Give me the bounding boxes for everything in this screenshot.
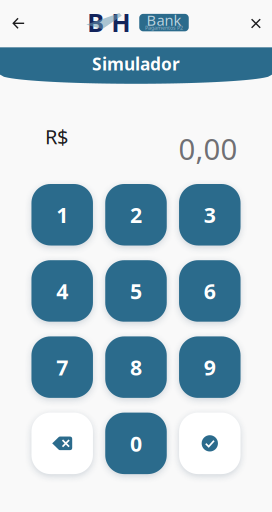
staticText: B [87,5,104,39]
button[interactable]: 7 [31,336,93,398]
button[interactable]: Confirmar [179,413,241,474]
button[interactable]: 5 [105,260,167,322]
staticText: 0,00 [178,129,237,168]
staticText: 8 [130,353,142,381]
button[interactable]: 0 [105,413,167,474]
staticText: 1 [56,201,68,229]
staticText: 6 [204,277,216,305]
staticText: Pagamentos P2 [145,24,183,31]
button[interactable]: 2 [105,184,167,245]
staticText: 4 [56,277,68,305]
staticText: Simulador [92,52,180,75]
staticText: 2 [130,201,142,229]
button[interactable]: 8 [105,336,167,398]
staticText: H [111,5,130,39]
staticText: 5 [130,277,142,305]
staticText: 7 [56,353,68,381]
staticText: 0 [130,429,142,457]
staticText: 3 [204,201,216,229]
staticText: 9 [204,353,216,381]
staticText: R$ [45,123,68,150]
button[interactable]: 9 [179,336,241,398]
button[interactable]: Fechar [236,3,272,43]
button[interactable]: Apagar [31,413,93,474]
button[interactable]: 1 [31,184,93,245]
button[interactable]: 3 [179,184,241,245]
staticText: Bank [146,10,181,30]
button[interactable]: 4 [31,260,93,322]
button[interactable]: Voltar [0,3,39,43]
button[interactable]: 6 [179,260,241,322]
